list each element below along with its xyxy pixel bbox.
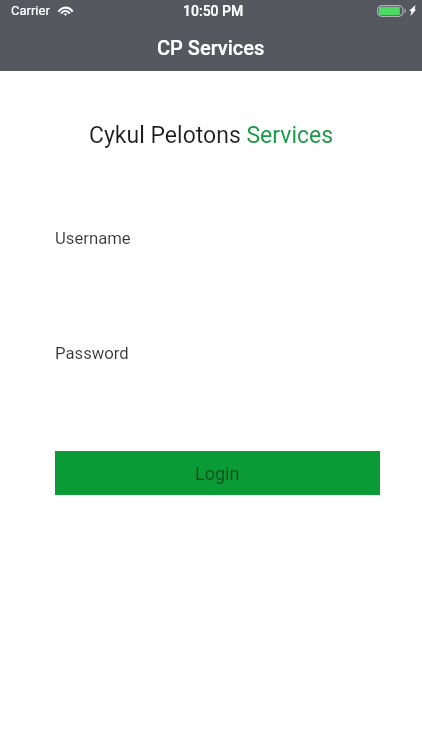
staticText: Cykul Pelotons Services xyxy=(89,122,334,149)
other: Charging xyxy=(409,5,416,16)
staticText: Login xyxy=(195,463,240,484)
button[interactable]: Username xyxy=(0,221,422,257)
staticText: Carrier xyxy=(11,3,50,18)
staticText: Username xyxy=(55,229,131,249)
staticText: 10:50 PM xyxy=(183,3,244,19)
other: Battery charge level xyxy=(377,5,406,17)
staticText: Password xyxy=(55,344,129,364)
other: Wi-Fi signal xyxy=(56,4,75,17)
staticText: CP Services xyxy=(157,36,265,59)
button[interactable]: Login xyxy=(55,451,380,495)
button[interactable]: Password xyxy=(0,336,422,372)
